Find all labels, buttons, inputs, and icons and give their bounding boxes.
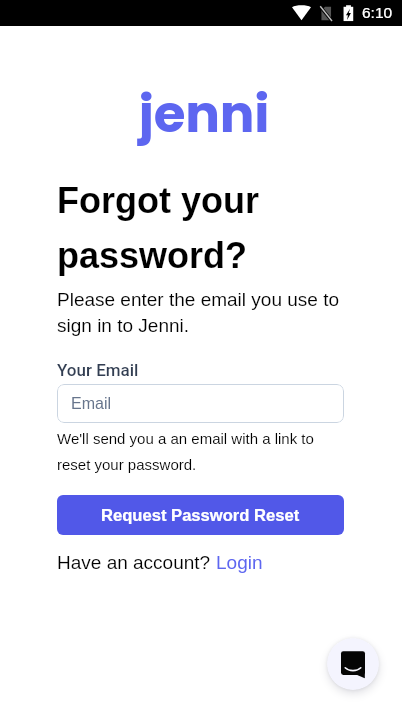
staticText: We'll send you a an email with a link to… [57, 423, 347, 475]
button[interactable]: Request Password Reset [57, 495, 344, 535]
button[interactable]: Open chat [327, 638, 379, 690]
staticText: Request Password Reset [101, 506, 300, 525]
staticText: Have an account? [57, 551, 216, 574]
staticText: 6:10 [362, 4, 393, 21]
button[interactable]: Login [216, 551, 263, 574]
staticText: Forgot your password? [57, 169, 347, 279]
button[interactable]: Email [57, 384, 344, 423]
staticText: Email [71, 395, 112, 413]
staticText: Please enter the email you use to sign i… [57, 285, 347, 337]
staticText: Your Email [57, 361, 139, 380]
staticText: jenni [3, 89, 402, 147]
